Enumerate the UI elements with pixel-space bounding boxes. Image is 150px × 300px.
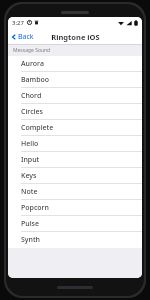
- staticText: Aurora: [21, 59, 44, 69]
- button[interactable]: Pulse: [8, 216, 142, 232]
- staticText: Back: [18, 32, 34, 42]
- button[interactable]: Chord: [8, 88, 142, 104]
- staticText: Input: [21, 155, 40, 165]
- staticText: Circles: [21, 107, 43, 117]
- staticText: Synth: [21, 235, 41, 245]
- staticText: 3:27: [12, 19, 24, 27]
- button[interactable]: Popcorn: [8, 200, 142, 216]
- button[interactable]: Aurora: [8, 56, 142, 72]
- button[interactable]: Note: [8, 184, 142, 200]
- button[interactable]: Synth: [8, 232, 142, 248]
- staticText: Bamboo: [21, 75, 50, 85]
- staticText: Keys: [21, 171, 37, 181]
- staticText: Pulse: [21, 219, 39, 229]
- button[interactable]: Input: [8, 152, 142, 168]
- button[interactable]: Hello: [8, 136, 142, 152]
- button[interactable]: Keys: [8, 168, 142, 184]
- staticText: Complete: [21, 123, 54, 133]
- staticText: Message Sound: [13, 47, 51, 54]
- staticText: Ringtone iOS: [51, 32, 100, 42]
- button[interactable]: Circles: [8, 104, 142, 120]
- staticText: Hello: [21, 139, 39, 149]
- button[interactable]: Bamboo: [8, 72, 142, 88]
- button[interactable]: Back: [8, 28, 40, 45]
- button[interactable]: Complete: [8, 120, 142, 136]
- staticText: Chord: [21, 91, 42, 101]
- staticText: Note: [21, 187, 38, 197]
- staticText: Popcorn: [21, 203, 49, 213]
